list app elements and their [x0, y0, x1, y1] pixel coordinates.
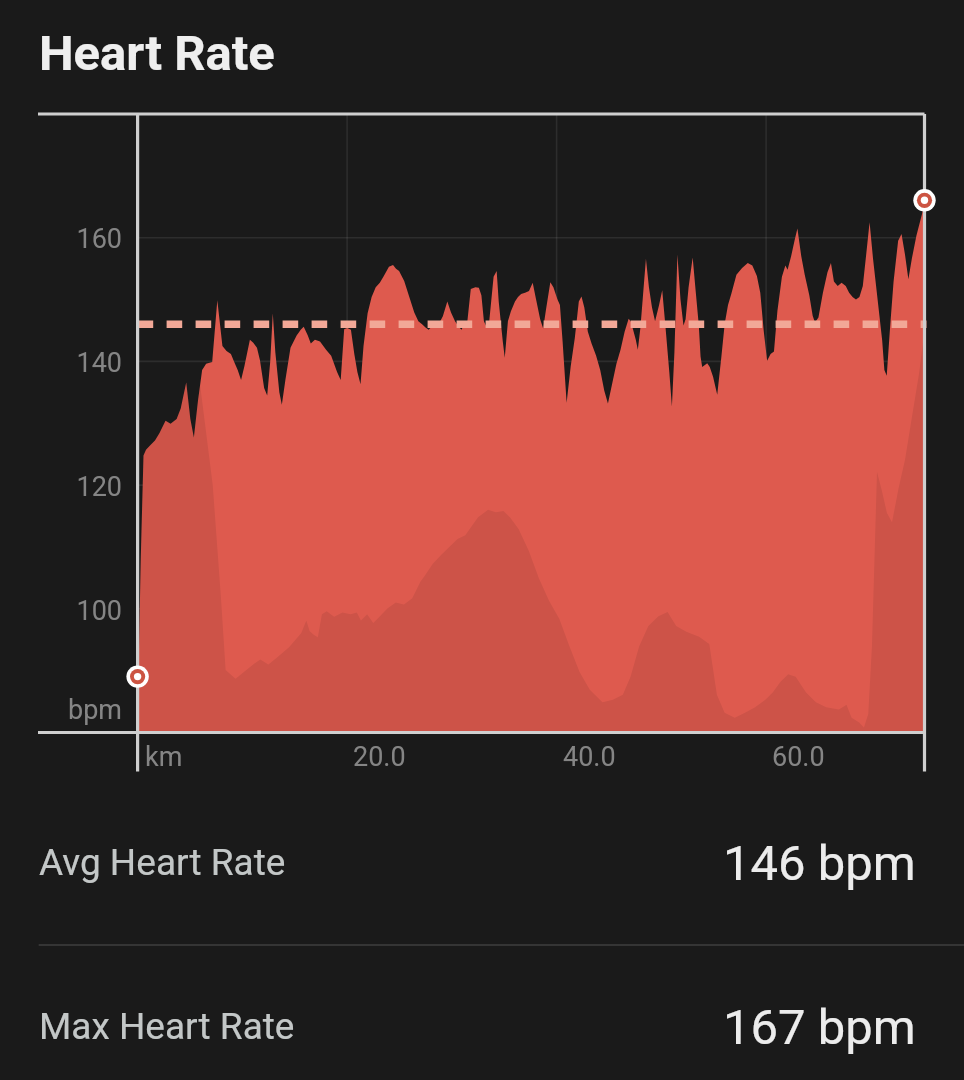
staticText: Max Heart Rate: [39, 1005, 295, 1048]
staticText: 100: [76, 595, 122, 627]
staticText: 40.0: [563, 741, 616, 773]
staticText: 146 bpm: [723, 835, 916, 892]
button[interactable]: Max Heart Rate: [0, 970, 964, 1080]
staticText: 20.0: [353, 741, 406, 773]
staticText: Avg Heart Rate: [39, 841, 286, 884]
staticText: 160: [76, 223, 122, 255]
staticText: km: [145, 741, 183, 773]
staticText: bpm: [68, 694, 122, 726]
staticText: 140: [76, 347, 122, 379]
staticText: 167 bpm: [723, 999, 916, 1056]
staticText: 60.0: [772, 741, 825, 773]
staticText: 120: [76, 471, 122, 503]
button[interactable]: Avg Heart Rate: [0, 806, 964, 920]
other: Heart rate chart over distance: [0, 0, 964, 1080]
staticText: Heart Rate: [39, 25, 275, 82]
